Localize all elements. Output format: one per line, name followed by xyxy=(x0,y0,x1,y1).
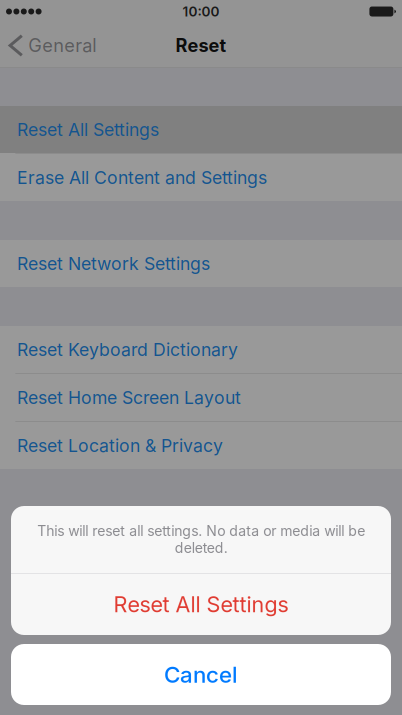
staticText: Reset Home Screen Layout xyxy=(17,387,241,408)
staticText: Reset Network Settings xyxy=(17,253,210,274)
staticText: Reset xyxy=(175,34,226,56)
staticText: Cancel xyxy=(164,661,238,688)
button[interactable]: Reset Location & Privacy xyxy=(0,422,402,469)
button[interactable]: Reset Keyboard Dictionary xyxy=(0,326,402,373)
button[interactable]: Reset Home Screen Layout xyxy=(0,374,402,421)
staticText: 10:00 xyxy=(182,3,219,20)
staticText: Reset Location & Privacy xyxy=(17,435,223,456)
staticText: Erase All Content and Settings xyxy=(17,167,267,188)
button[interactable]: Erase All Content and Settings xyxy=(0,154,402,201)
button[interactable]: Cancel xyxy=(11,644,391,705)
button[interactable]: Reset All Settings xyxy=(11,574,391,635)
staticText: Reset All Settings xyxy=(113,591,288,617)
staticText: This will reset all settings. No data or… xyxy=(37,523,365,556)
button[interactable]: Back to General xyxy=(0,23,104,68)
button[interactable]: Reset All Settings xyxy=(0,106,402,153)
staticText: Reset All Settings xyxy=(17,119,159,140)
staticText: General xyxy=(28,34,96,56)
button[interactable]: Reset Network Settings xyxy=(0,240,402,287)
staticText: Reset Keyboard Dictionary xyxy=(17,339,238,360)
